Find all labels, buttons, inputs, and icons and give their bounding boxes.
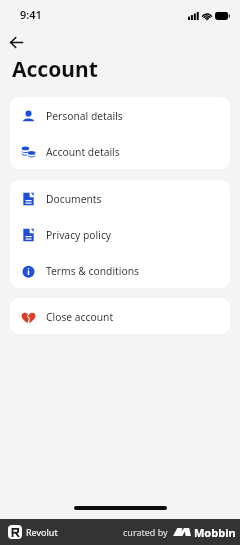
staticText: Mobbin	[194, 525, 236, 540]
staticText: Account	[12, 55, 98, 83]
button[interactable]: Back	[5, 31, 27, 53]
button[interactable]: Documents	[10, 180, 230, 216]
staticText: Revolut	[26, 526, 58, 538]
button[interactable]: Terms & conditions	[10, 252, 230, 288]
staticText: Account details	[46, 145, 120, 159]
staticText: 9:41	[20, 7, 42, 22]
staticText: Privacy policy	[46, 228, 112, 242]
staticText: Close account	[46, 310, 114, 324]
staticText: Personal details	[46, 109, 123, 123]
staticText: curated by	[123, 526, 168, 538]
button[interactable]: Close account	[10, 298, 230, 334]
button[interactable]: Personal details	[10, 97, 230, 133]
staticText: Terms & conditions	[46, 264, 139, 278]
staticText: Documents	[46, 192, 102, 206]
button[interactable]: Account details	[10, 133, 230, 169]
button[interactable]: Privacy policy	[10, 216, 230, 252]
